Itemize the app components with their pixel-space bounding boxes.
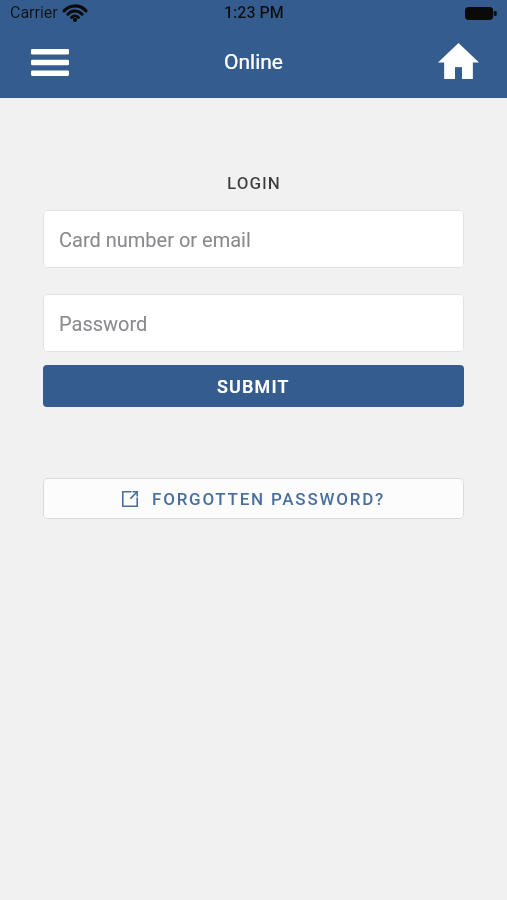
staticText: 1:23 PM (224, 3, 284, 22)
button[interactable] (429, 38, 487, 88)
button[interactable]: Password (43, 294, 464, 352)
button[interactable]: Card number or email (43, 210, 464, 268)
staticText: Card number or email (59, 228, 251, 251)
staticText: LOGIN (227, 173, 281, 193)
staticText: FORGOTTEN PASSWORD? (152, 489, 386, 509)
button[interactable] (22, 39, 78, 87)
button[interactable]: SUBMIT (43, 365, 464, 407)
button[interactable]: FORGOTTEN PASSWORD? (43, 478, 464, 519)
staticText: Password (59, 312, 148, 335)
staticText: Online (224, 50, 283, 75)
staticText: Carrier (10, 3, 58, 22)
staticText: SUBMIT (217, 376, 290, 397)
